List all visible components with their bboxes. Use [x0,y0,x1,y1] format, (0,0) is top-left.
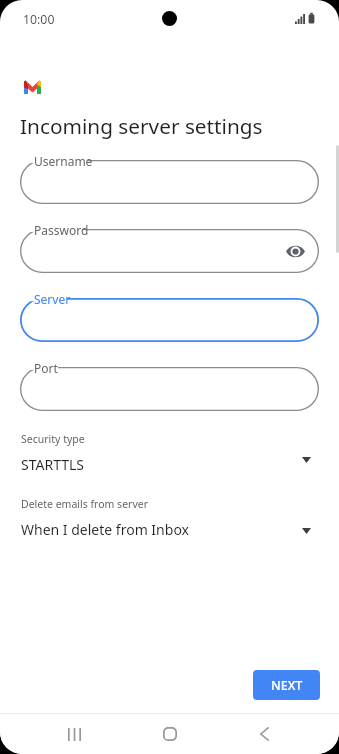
staticText: 10:00 [23,11,55,28]
button[interactable]: Show password [281,237,309,265]
button[interactable]: Home [147,714,192,754]
button[interactable]: Username [20,160,319,204]
staticText: NEXT [271,677,303,694]
button[interactable]: NEXT [253,670,320,700]
staticText: Security type [21,432,85,446]
staticText: Delete emails from server [21,497,148,511]
button[interactable]: Recent apps [52,714,97,754]
staticText: Port [34,360,58,376]
staticText: Server [34,291,71,307]
button[interactable]: Port [20,367,319,411]
button[interactable] [0,424,339,475]
staticText: STARTTLS [21,455,85,474]
button[interactable]: Back [242,714,287,754]
staticText: Username [34,153,93,169]
button[interactable]: Password [20,229,319,273]
button[interactable] [0,489,339,540]
staticText: When I delete from Inbox [21,520,189,539]
button[interactable]: Server [20,298,319,342]
staticText: Incoming server settings [20,112,263,140]
staticText: Password [34,222,89,238]
